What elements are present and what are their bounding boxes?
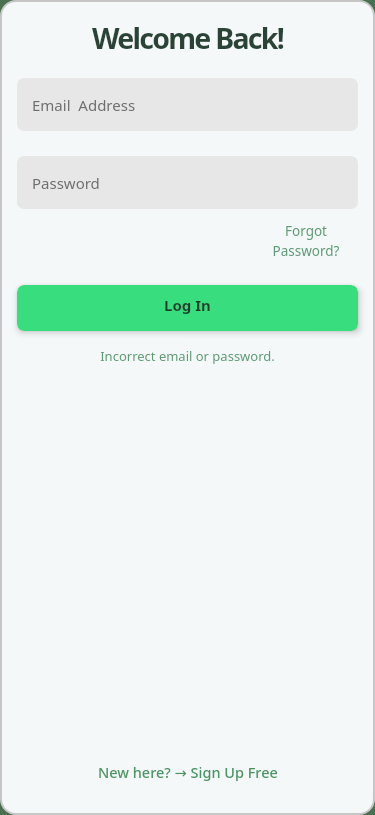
button[interactable]: Password bbox=[17, 156, 358, 209]
button[interactable]: Forgot Password? bbox=[255, 222, 357, 260]
staticText: Welcome Back! bbox=[2, 19, 373, 58]
staticText: Incorrect email or password. bbox=[2, 347, 373, 365]
staticText: New here? → Sign Up Free bbox=[98, 762, 278, 782]
staticText: Forgot Password? bbox=[255, 222, 357, 260]
staticText: Email Address bbox=[32, 95, 136, 115]
staticText: Password bbox=[32, 173, 100, 193]
button[interactable]: Log In bbox=[17, 285, 358, 331]
button[interactable]: New here? → Sign Up Free bbox=[98, 762, 278, 782]
staticText: Log In bbox=[164, 295, 211, 315]
button[interactable]: Email Address bbox=[17, 78, 358, 131]
